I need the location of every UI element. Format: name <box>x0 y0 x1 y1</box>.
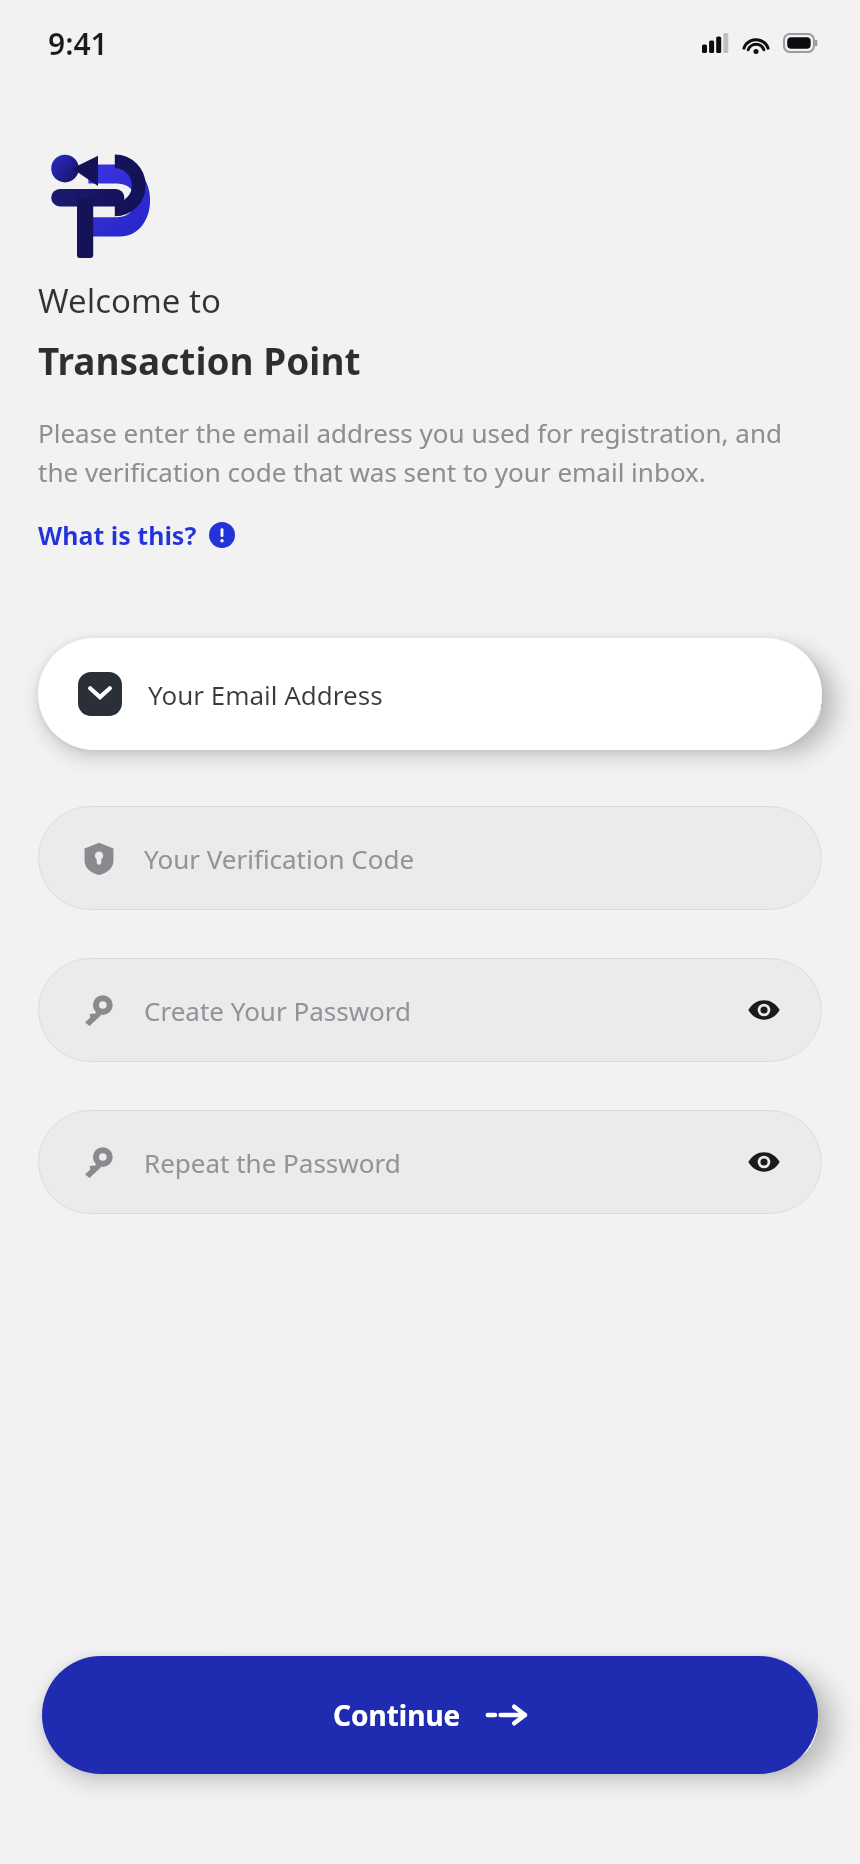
button[interactable]: Your Email Address <box>38 638 822 750</box>
staticText: Your Verification Code <box>144 841 415 876</box>
staticText: What is this? <box>38 518 197 552</box>
staticText: Continue <box>333 1696 461 1734</box>
staticText: Welcome to <box>38 278 221 323</box>
staticText: Your Email Address <box>148 677 383 712</box>
button[interactable]: Show password <box>742 988 786 1032</box>
staticText: Please enter the email address you used … <box>38 415 822 490</box>
button[interactable]: Continue <box>42 1656 818 1774</box>
button[interactable]: What is this? <box>38 518 235 552</box>
button[interactable]: Show password <box>742 1140 786 1184</box>
button[interactable]: Create Your Password <box>38 958 822 1062</box>
staticText: Create Your Password <box>144 993 412 1028</box>
staticText: Repeat the Password <box>144 1145 401 1180</box>
staticText: Transaction Point <box>38 335 361 385</box>
staticText: 9:41 <box>48 23 108 64</box>
button[interactable]: Repeat the Password <box>38 1110 822 1214</box>
button[interactable]: Your Verification Code <box>38 806 822 910</box>
